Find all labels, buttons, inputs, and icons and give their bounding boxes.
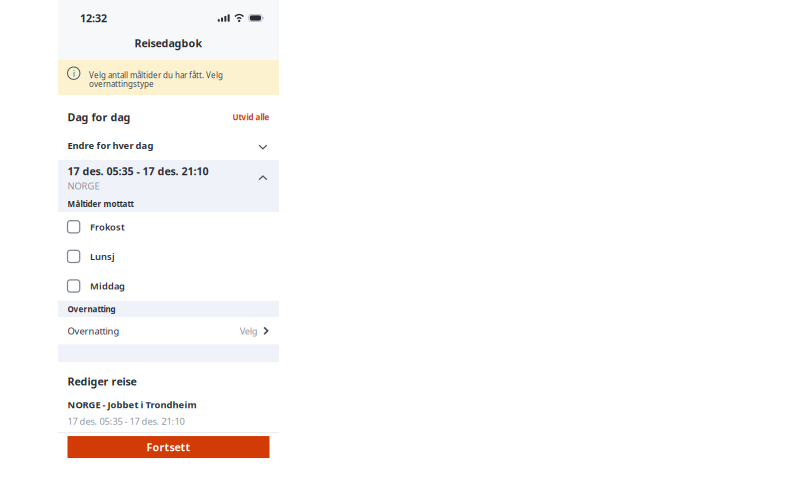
button[interactable]: Middag [58, 271, 279, 301]
staticText: 17 des. 05:35 - 17 des. 21:10 [67, 164, 208, 178]
staticText: 17 des. 05:35 - 17 des. 21:10 [67, 415, 184, 427]
button[interactable]: Lunsj [58, 242, 279, 271]
staticText: Rediger reise [67, 374, 136, 388]
staticText: Middag [90, 280, 125, 292]
button[interactable]: Endre for hver dag [58, 131, 279, 160]
button[interactable]: Frokost [58, 212, 279, 242]
staticText: overnattingstype [89, 79, 154, 89]
staticText: Dag for dag [67, 110, 130, 124]
staticText: Overnatting [67, 325, 119, 337]
button[interactable]: Fortsett [67, 436, 269, 458]
staticText: i [73, 67, 75, 79]
staticText: Utvid alle [232, 112, 269, 122]
staticText: Overnatting [67, 304, 115, 314]
staticText: 12:32 [80, 11, 107, 25]
staticText: NORGE [67, 180, 99, 192]
staticText: Måltider mottatt [67, 199, 133, 209]
staticText: Endre for hver dag [67, 139, 153, 152]
staticText: Frokost [90, 221, 125, 233]
staticText: Velg antall måltider du har fått. Velg [89, 70, 223, 80]
button[interactable]: Utvid alle [232, 112, 269, 122]
staticText: Fortsett [146, 440, 190, 454]
button[interactable]: 17 des. 05:35 - 17 des. 21:10 [58, 160, 279, 196]
staticText: NORGE - Jobbet i Trondheim [67, 398, 196, 411]
staticText: Reisedagbok [134, 36, 202, 50]
staticText: Lunsj [90, 250, 115, 263]
staticText: Velg [240, 325, 258, 337]
button[interactable]: Overnatting [58, 317, 279, 344]
